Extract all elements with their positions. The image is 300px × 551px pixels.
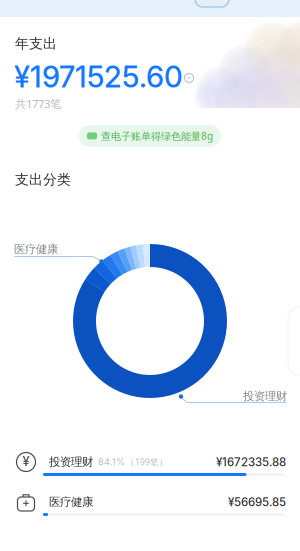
staticText: 支出分类 — [15, 171, 71, 188]
staticText: 医疗健康 — [14, 242, 58, 256]
staticText: ¥56695.85 — [228, 495, 286, 509]
staticText: 投资理财 — [49, 455, 93, 469]
button[interactable]: 查电子账单得绿色能量8g — [79, 125, 221, 147]
staticText: 查电子账单得绿色能量8g — [101, 129, 213, 143]
staticText: ¥ — [22, 454, 29, 469]
staticText: ¥1672335.88 — [216, 455, 286, 469]
staticText: 84.1% — [98, 456, 125, 467]
staticText: 共1773笔 — [15, 96, 61, 111]
staticText: （199笔） — [126, 456, 168, 468]
staticText: ¥1971525.60 — [14, 59, 183, 94]
button[interactable]: Info — [183, 72, 195, 84]
staticText: 医疗健康 — [49, 495, 93, 509]
staticText: 年支出 — [15, 35, 57, 52]
button[interactable]: 医疗健康 — [0, 492, 300, 516]
staticText: 投资理财 — [243, 389, 287, 403]
button[interactable]: ¥ — [0, 452, 300, 476]
